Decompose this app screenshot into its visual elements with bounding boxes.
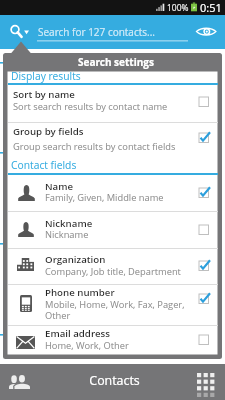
staticText: Mobile, Home, Work, Fax, Pager, Other — [45, 298, 185, 322]
button[interactable] — [8, 249, 218, 285]
staticText: Family, Given, Middle name — [45, 191, 164, 204]
button[interactable]: Search options — [4, 15, 34, 49]
staticText: Sort by name — [13, 88, 75, 101]
button[interactable]: Contacts — [0, 364, 40, 400]
button[interactable]: Keypad — [185, 364, 225, 400]
staticText: Organization — [45, 253, 106, 266]
button[interactable] — [8, 212, 218, 247]
button[interactable]: Show preview — [192, 17, 221, 47]
staticText: Contact fields — [11, 158, 77, 172]
button[interactable] — [8, 326, 218, 355]
staticText: Display results — [11, 69, 81, 83]
staticText: Group search results by contact fields — [13, 140, 176, 153]
staticText: 100% — [167, 2, 189, 14]
staticText: Name — [45, 180, 74, 193]
button[interactable] — [8, 285, 218, 325]
staticText: Contacts — [2, 372, 225, 389]
button[interactable] — [8, 123, 218, 158]
staticText: Group by fields — [13, 125, 84, 138]
staticText: Email address — [45, 327, 110, 340]
staticText: Sort search results by contact name — [13, 100, 168, 113]
staticText: Phone number — [45, 286, 115, 299]
staticText: Nickname — [45, 228, 89, 241]
button[interactable] — [8, 175, 218, 212]
button[interactable] — [8, 85, 218, 123]
staticText: Search settings — [78, 55, 154, 69]
staticText: Company, Job title, Department — [45, 265, 181, 278]
staticText: Search for 127 contacts... — [38, 25, 155, 39]
staticText: 0:51 — [200, 0, 222, 15]
staticText: Home, Work, Other — [45, 339, 129, 352]
staticText: Nickname — [45, 217, 93, 230]
